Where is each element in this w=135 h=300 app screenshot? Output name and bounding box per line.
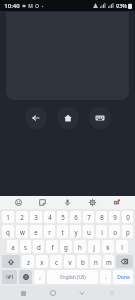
button[interactable]: e xyxy=(30,225,42,238)
button[interactable]: m xyxy=(103,255,114,268)
button[interactable]: Emoji xyxy=(12,196,25,209)
staticText: . xyxy=(105,273,107,281)
button[interactable]: o xyxy=(109,225,120,238)
button[interactable]: , xyxy=(34,270,45,284)
staticText: 8 xyxy=(100,213,104,221)
staticText: 10:40 xyxy=(4,2,20,10)
staticText: e xyxy=(34,228,38,236)
button[interactable]: Back xyxy=(25,107,47,129)
button[interactable]: r xyxy=(44,225,55,238)
staticText: d xyxy=(37,243,41,251)
button[interactable]: English (US) xyxy=(47,270,98,284)
button[interactable]: 0 xyxy=(122,211,133,223)
button[interactable]: i xyxy=(96,225,107,238)
staticText: a xyxy=(11,243,15,251)
staticText: c xyxy=(55,258,58,266)
staticText: 9 xyxy=(113,213,117,221)
staticText: English (US) xyxy=(60,274,86,280)
button[interactable]: c xyxy=(50,255,62,268)
button[interactable]: Home xyxy=(46,286,60,300)
button[interactable]: f xyxy=(46,240,58,253)
staticText: w xyxy=(20,228,25,236)
button[interactable]: y xyxy=(70,225,81,238)
staticText: u xyxy=(87,228,91,236)
button[interactable]: l xyxy=(116,240,128,253)
staticText: 6 xyxy=(74,213,78,221)
staticText: z xyxy=(27,258,30,266)
staticText: f xyxy=(51,243,54,251)
staticText: q xyxy=(6,228,10,236)
button[interactable]: t xyxy=(57,225,68,238)
button[interactable]: n xyxy=(90,255,101,268)
button[interactable]: !#1 xyxy=(2,270,17,284)
staticText: k xyxy=(106,243,110,251)
button[interactable]: b xyxy=(77,255,88,268)
staticText: 93% xyxy=(116,2,127,9)
staticText: 1 xyxy=(6,213,10,221)
staticText: , xyxy=(39,273,41,281)
staticText: r xyxy=(48,228,51,236)
staticText: b xyxy=(81,258,85,266)
button[interactable]: 9 xyxy=(109,211,120,223)
button[interactable]: . xyxy=(100,270,111,284)
button[interactable]: h xyxy=(74,240,86,253)
staticText: m xyxy=(106,258,112,266)
button[interactable]: z xyxy=(22,255,34,268)
button[interactable]: 5 xyxy=(57,211,68,223)
button[interactable]: Settings xyxy=(86,196,99,209)
button[interactable]: 7 xyxy=(83,211,94,223)
button[interactable]: 1 xyxy=(2,211,14,223)
button[interactable]: 6 xyxy=(70,211,81,223)
button[interactable]: k xyxy=(102,240,114,253)
staticText: 4 xyxy=(48,213,52,221)
button[interactable]: 2 xyxy=(16,211,28,223)
button[interactable]: Stickers xyxy=(36,196,49,209)
staticText: p xyxy=(126,228,130,236)
button[interactable]: Done xyxy=(113,270,133,284)
staticText: M xyxy=(28,3,33,10)
staticText: y xyxy=(74,228,78,236)
button[interactable]: j xyxy=(88,240,100,253)
staticText: 5 xyxy=(61,213,65,221)
staticText: 7 xyxy=(87,213,91,221)
button[interactable]: Recents xyxy=(16,286,30,300)
button[interactable]: w xyxy=(16,225,28,238)
staticText: n xyxy=(94,258,98,266)
staticText: j xyxy=(93,243,95,251)
button[interactable]: More options xyxy=(110,196,123,209)
staticText: 3 xyxy=(34,213,38,221)
staticText: Done xyxy=(117,274,130,281)
staticText: g xyxy=(64,243,68,251)
button[interactable]: 4 xyxy=(44,211,55,223)
button[interactable]: Voice input xyxy=(61,196,74,209)
staticText: h xyxy=(78,243,82,251)
staticText: t xyxy=(61,228,64,236)
staticText: l xyxy=(121,243,123,251)
button[interactable]: g xyxy=(60,240,72,253)
button[interactable]: v xyxy=(64,255,75,268)
staticText: i xyxy=(101,228,103,236)
staticText: x xyxy=(40,258,44,266)
button[interactable] xyxy=(2,255,20,268)
button[interactable]: p xyxy=(122,225,133,238)
button[interactable]: q xyxy=(2,225,14,238)
staticText: 0 xyxy=(126,213,130,221)
button[interactable]: s xyxy=(20,240,31,253)
staticText: !#1 xyxy=(6,274,14,281)
button[interactable]: Keyboard xyxy=(89,107,111,129)
button[interactable]: a xyxy=(7,240,18,253)
staticText: 2 xyxy=(20,213,24,221)
staticText: o xyxy=(113,228,117,236)
button[interactable]: 8 xyxy=(96,211,107,223)
button[interactable]: x xyxy=(36,255,48,268)
button[interactable] xyxy=(19,270,32,284)
staticText: s xyxy=(24,243,27,251)
button[interactable]: d xyxy=(33,240,44,253)
button[interactable]: 3 xyxy=(30,211,42,223)
button[interactable]: More xyxy=(105,286,119,300)
staticText: v xyxy=(68,258,72,266)
button[interactable]: Home xyxy=(57,107,79,129)
button[interactable]: u xyxy=(83,225,94,238)
button[interactable]: Hide keyboard xyxy=(75,286,89,300)
button[interactable] xyxy=(116,255,133,268)
